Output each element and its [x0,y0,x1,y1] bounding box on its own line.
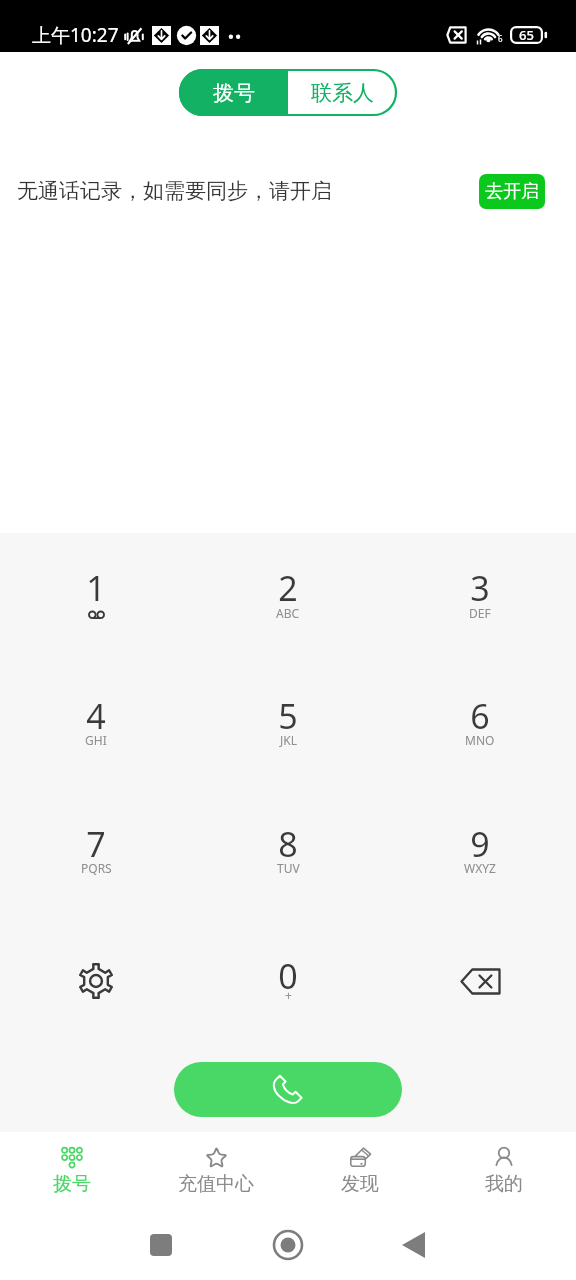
staticText: 去开启 [485,180,539,203]
staticText: 7 [86,821,106,867]
button[interactable]: 2 [198,542,378,652]
button[interactable]: 6 [390,670,570,780]
staticText: 4 [86,693,106,739]
button[interactable]: 7 [6,798,186,908]
staticText: MNO [465,732,495,748]
staticText: 1 [86,565,106,611]
staticText: 我的 [485,1172,523,1196]
staticText: 5 [278,693,298,739]
button[interactable]: Call [174,1062,402,1117]
staticText: 0 [278,953,298,999]
staticText: DEF [469,605,491,621]
button[interactable]: 3 [390,542,570,652]
staticText: 9 [470,821,490,867]
button[interactable]: Settings [6,929,186,1033]
staticText: 6 [470,693,490,739]
staticText: 65 [519,26,534,44]
button[interactable]: 拨号 [179,69,288,116]
button[interactable]: 4 [6,670,186,780]
button[interactable]: 1 [6,542,186,652]
staticText: WXYZ [464,860,496,876]
staticText: PQRS [81,860,112,876]
button[interactable]: 充值中心 [144,1132,288,1208]
button[interactable]: 发现 [288,1132,432,1208]
button[interactable]: 去开启 [479,174,545,209]
button[interactable]: Backspace [390,929,570,1033]
staticText: + [285,987,292,1003]
staticText: 3 [470,565,490,611]
staticText: 2 [278,565,298,611]
staticText: 拨号 [213,80,255,106]
staticText: 6 [498,33,503,44]
button[interactable]: 5 [198,670,378,780]
staticText: TUV [277,860,300,876]
button[interactable]: 8 [198,798,378,908]
staticText: 发现 [341,1172,379,1196]
staticText: 8 [278,821,298,867]
staticText: 充值中心 [178,1172,254,1196]
staticText: GHI [85,732,107,748]
button[interactable]: 联系人 [288,69,397,116]
staticText: 拨号 [53,1172,91,1196]
button[interactable]: 9 [390,798,570,908]
button[interactable]: 拨号 [0,1132,144,1208]
staticText: JKL [280,732,297,748]
button[interactable]: 0 [198,930,378,1040]
staticText: 联系人 [311,80,374,106]
staticText: 上午10:27 [32,22,119,48]
staticText: 无通话记录，如需要同步，请开启 [17,178,332,204]
staticText: ABC [276,605,300,621]
button[interactable]: 我的 [432,1132,576,1208]
